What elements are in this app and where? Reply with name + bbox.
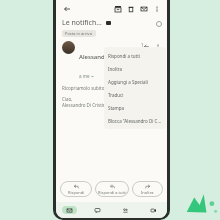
staticText: Ricopriamolo subito. <box>62 85 106 91</box>
button[interactable]: Mark unread <box>137 2 150 15</box>
staticText: Rispondi a tutti <box>108 53 140 59</box>
button[interactable]: Reply <box>141 41 152 52</box>
staticText: Posta in arrivo <box>65 31 93 36</box>
staticText: Ciao, <box>62 96 73 102</box>
button[interactable]: Traduci <box>104 88 166 101</box>
button[interactable]: Aggiungi a Speciali <box>104 75 166 88</box>
staticText: Inoltra <box>141 190 154 195</box>
button[interactable]: Meet <box>139 202 167 218</box>
staticText: Aggiungi a Speciali <box>108 79 148 85</box>
button[interactable]: Archive <box>111 2 124 15</box>
staticText: Traduci <box>108 92 124 98</box>
button[interactable]: Blocca "Alessandro Di Cristina" <box>104 114 166 127</box>
staticText: Rispondi a tutti <box>98 190 127 195</box>
button[interactable]: More message options <box>152 41 163 52</box>
button[interactable]: Inoltra <box>132 181 163 197</box>
button[interactable]: Sender avatar <box>62 41 75 54</box>
button[interactable]: Back <box>60 2 73 15</box>
button[interactable]: More options <box>150 2 163 15</box>
staticText: Le notifiche sono rosse? <box>62 18 104 28</box>
button[interactable]: Stampa <box>104 101 166 114</box>
staticText: Stampa <box>108 105 125 111</box>
button[interactable]: Rispondi a tutti <box>95 181 129 197</box>
button[interactable]: Rispondi a tutti <box>104 49 166 62</box>
button[interactable]: Spaces <box>111 202 139 218</box>
staticText: Alessandro Di Cristina <box>62 102 109 108</box>
staticText: Inoltra <box>108 66 123 72</box>
button[interactable]: Delete <box>124 2 137 15</box>
staticText: Blocca "Alessandro Di Cristina" <box>108 118 162 124</box>
button[interactable]: Star <box>154 19 163 28</box>
button[interactable]: Rispondi <box>60 181 92 197</box>
button[interactable]: Mail <box>56 202 83 218</box>
button[interactable]: Chat <box>83 202 111 218</box>
staticText: Rispondi <box>68 190 85 195</box>
staticText: a me <box>79 73 90 79</box>
staticText: Alessandro Di Cristina <box>79 53 141 61</box>
button[interactable]: Inoltra <box>104 62 166 75</box>
button[interactable]: Posta in arrivo <box>65 31 93 36</box>
